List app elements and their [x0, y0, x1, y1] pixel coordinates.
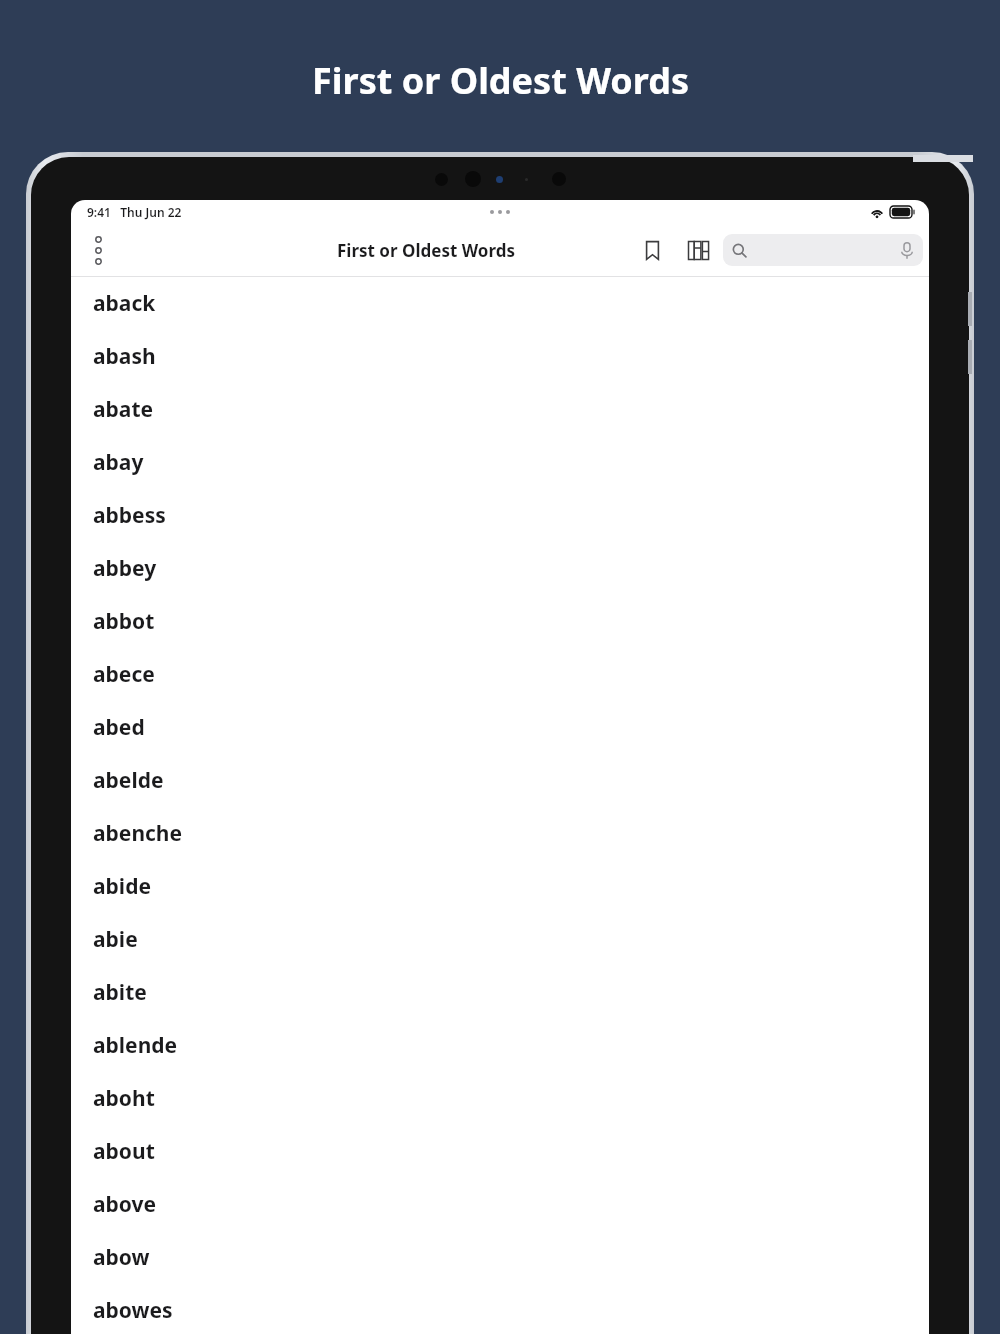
staticText: aboht	[93, 1084, 155, 1113]
staticText: abed	[93, 713, 145, 742]
button[interactable]: abite	[71, 966, 929, 1019]
staticText: abelde	[93, 766, 164, 795]
button[interactable]: abed	[71, 701, 929, 754]
button[interactable]: abbey	[71, 542, 929, 595]
staticText: abite	[93, 978, 147, 1007]
staticText: above	[93, 1190, 157, 1219]
button[interactable]: abelde	[71, 754, 929, 807]
staticText: abbot	[93, 607, 155, 636]
button[interactable]: ablende	[71, 1019, 929, 1072]
button[interactable]: abenche	[71, 807, 929, 860]
button[interactable]: abash	[71, 330, 929, 383]
staticText: abash	[93, 342, 156, 371]
button[interactable]: aboht	[71, 1072, 929, 1125]
button[interactable]: abece	[71, 648, 929, 701]
button[interactable]: Menu	[81, 233, 115, 267]
button[interactable]: about	[71, 1125, 929, 1178]
button[interactable]: Bookmarks	[633, 231, 671, 269]
button[interactable]: abay	[71, 436, 929, 489]
staticText: abow	[93, 1243, 150, 1272]
staticText: abie	[93, 925, 138, 954]
button[interactable]: abide	[71, 860, 929, 913]
button[interactable]: abbot	[71, 595, 929, 648]
staticText: abbess	[93, 501, 166, 530]
staticText: abece	[93, 660, 155, 689]
button[interactable]: Library	[679, 231, 717, 269]
button[interactable]: aback	[71, 277, 929, 330]
staticText: aback	[93, 289, 156, 318]
button[interactable]: abowes	[71, 1284, 929, 1334]
button[interactable]: abate	[71, 383, 929, 436]
staticText: First or Oldest Words	[337, 239, 515, 262]
staticText: 9:41 Thu Jun 22	[87, 204, 182, 220]
button[interactable]: abie	[71, 913, 929, 966]
button[interactable]: above	[71, 1178, 929, 1231]
staticText: abay	[93, 448, 144, 477]
button[interactable]: abow	[71, 1231, 929, 1284]
staticText: abide	[93, 872, 151, 901]
staticText: First or Oldest Words	[312, 56, 689, 105]
staticText: about	[93, 1137, 155, 1166]
staticText: ablende	[93, 1031, 178, 1060]
button[interactable]: abbess	[71, 489, 929, 542]
button[interactable]	[723, 234, 923, 266]
staticText: abbey	[93, 554, 157, 583]
staticText: abowes	[93, 1296, 173, 1325]
staticText: abenche	[93, 819, 183, 848]
staticText: abate	[93, 395, 154, 424]
